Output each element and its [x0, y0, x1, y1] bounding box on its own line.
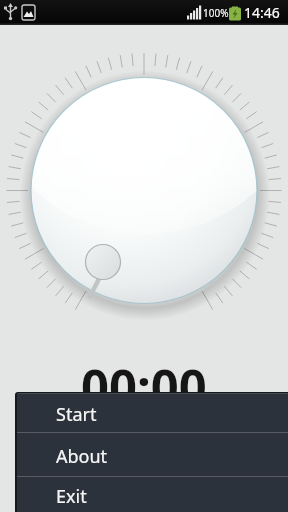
button[interactable]: Start — [17, 393, 288, 432]
staticText: 14:46 — [244, 3, 280, 22]
staticText: 00:00 — [81, 353, 207, 420]
staticText: About — [56, 444, 108, 469]
button[interactable]: Exit — [17, 477, 288, 512]
staticText: Exit — [56, 484, 87, 509]
staticText: 100% — [203, 6, 229, 20]
staticText: Start — [56, 402, 97, 427]
button[interactable]: About — [17, 433, 288, 476]
